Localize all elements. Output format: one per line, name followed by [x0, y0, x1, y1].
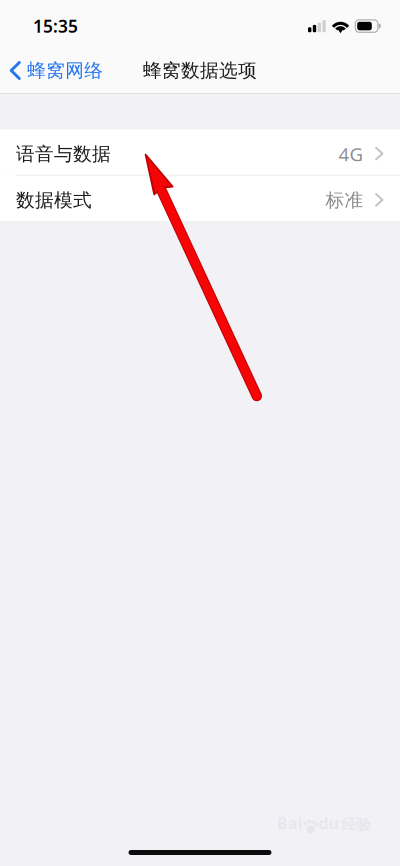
button[interactable]: 语音与数据: [0, 129, 400, 176]
staticText: Bai: [277, 812, 303, 834]
staticText: 标准: [326, 189, 364, 212]
staticText: 语音与数据: [16, 143, 111, 165]
staticText: 15:35: [33, 14, 78, 37]
staticText: du: [318, 812, 338, 834]
staticText: 数据模式: [16, 189, 92, 212]
staticText: 经验: [341, 816, 371, 834]
button[interactable]: 数据模式: [0, 176, 400, 221]
button[interactable]: 蜂窝网络: [0, 46, 120, 93]
staticText: 4G: [339, 142, 364, 166]
staticText: 蜂窝网络: [27, 59, 103, 82]
staticText: 蜂窝数据选项: [143, 59, 257, 82]
